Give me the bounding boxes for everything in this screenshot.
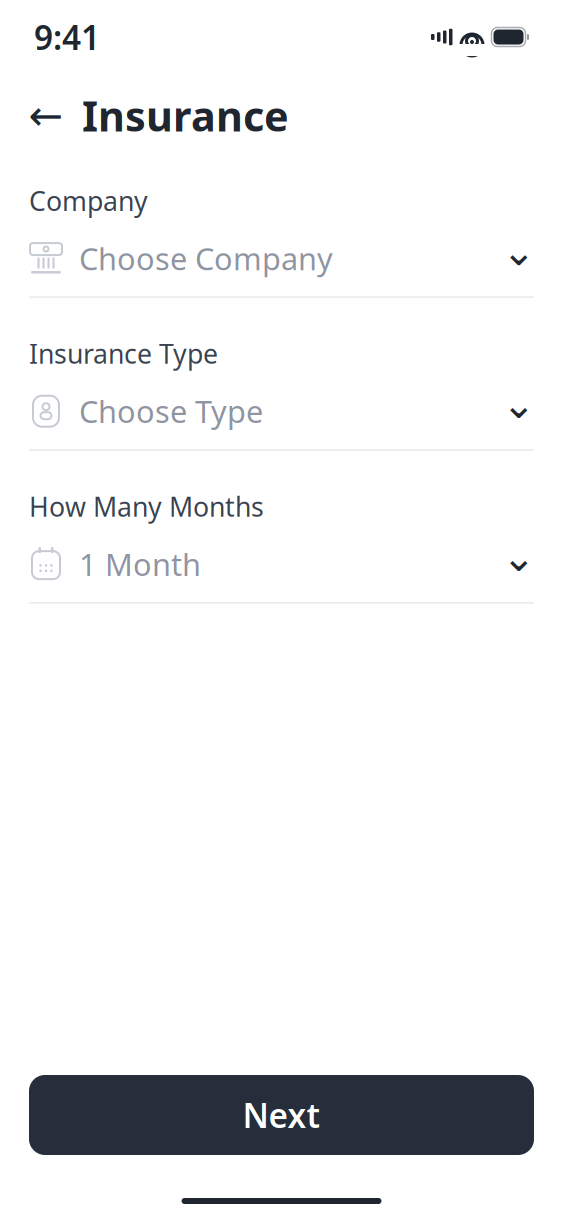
- button[interactable]: 1 Month: [29, 544, 534, 584]
- button[interactable]: Choose Type: [29, 391, 534, 431]
- staticText: 9:41: [34, 15, 100, 59]
- staticText: 1 Month: [79, 544, 201, 584]
- staticText: ⌄: [502, 381, 536, 427]
- staticText: Choose Company: [79, 238, 333, 279]
- staticText: Choose Type: [79, 391, 263, 432]
- staticText: Insurance: [82, 88, 289, 143]
- staticText: Insurance Type: [29, 336, 218, 371]
- staticText: ⌄: [502, 229, 536, 274]
- button[interactable]: Choose Company: [29, 238, 534, 278]
- staticText: How Many Months: [29, 489, 264, 524]
- staticText: ⌄: [502, 534, 536, 580]
- staticText: Company: [29, 183, 148, 218]
- staticText: ←: [28, 92, 63, 139]
- button[interactable]: Next: [29, 1075, 534, 1155]
- button[interactable]: Back: [24, 93, 68, 137]
- staticText: Next: [242, 1093, 320, 1137]
